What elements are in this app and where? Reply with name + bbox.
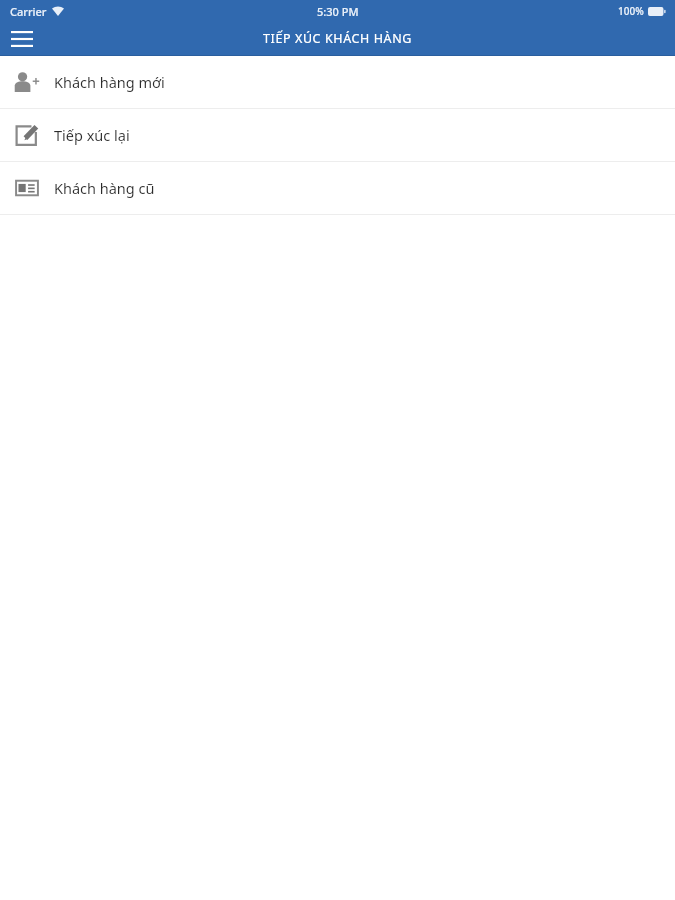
staticText: Khách hàng cũ [54, 178, 155, 198]
staticText: TIẾP XÚC KHÁCH HÀNG [263, 30, 412, 47]
staticText: Khách hàng mới [54, 72, 165, 92]
button[interactable]: Khách hàng cũ [0, 162, 675, 214]
staticText: 5:30 PM [317, 4, 359, 19]
button[interactable]: Tiếp xúc lại [0, 109, 675, 161]
button[interactable]: Open navigation menu [0, 22, 44, 55]
staticText: Tiếp xúc lại [54, 125, 130, 145]
staticText: Carrier [10, 4, 47, 19]
staticText: 100% [618, 4, 644, 18]
button[interactable]: Khách hàng mới [0, 56, 675, 108]
